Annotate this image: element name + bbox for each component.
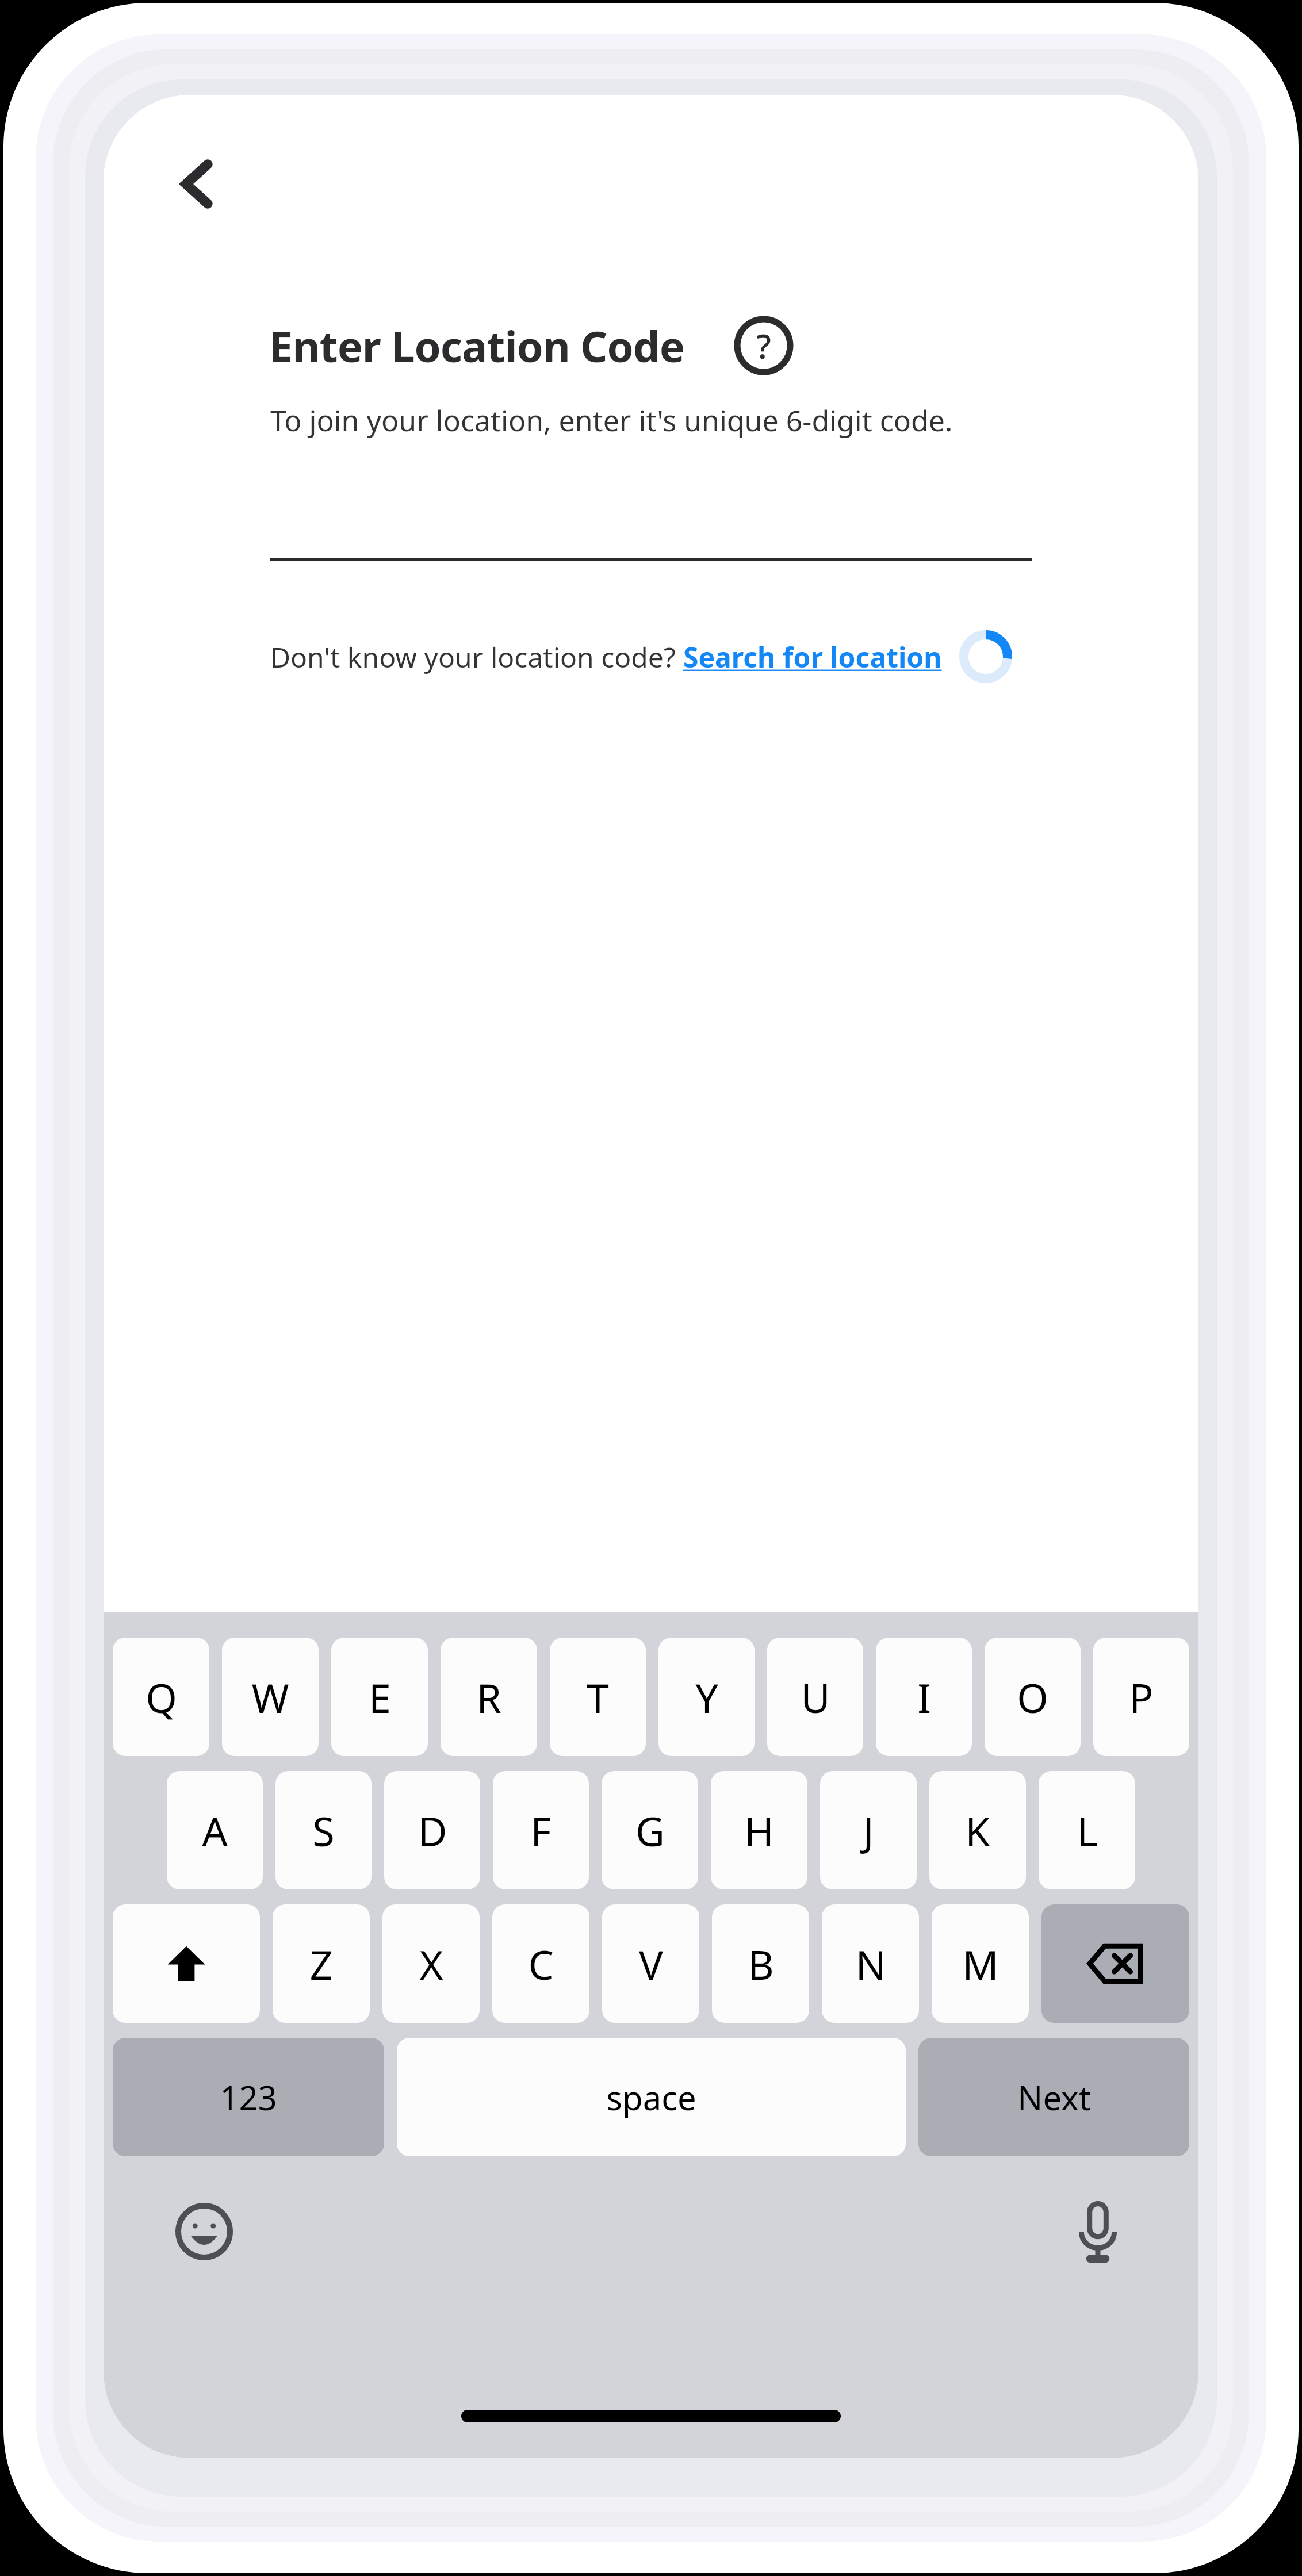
staticText: K [965, 1803, 990, 1858]
button[interactable]: W [222, 1638, 319, 1756]
staticText: I [917, 1670, 931, 1724]
staticText: L [1077, 1803, 1098, 1858]
staticText: M [962, 1937, 999, 1991]
button[interactable]: Help [732, 313, 796, 378]
button[interactable]: P [1093, 1638, 1189, 1756]
button[interactable]: L [1039, 1771, 1135, 1889]
button[interactable]: B [712, 1904, 809, 2023]
staticText: T [587, 1670, 609, 1724]
staticText: W [251, 1670, 289, 1724]
staticText: 123 [220, 2075, 277, 2120]
staticText: H [744, 1803, 774, 1858]
button[interactable]: R [441, 1638, 537, 1756]
button[interactable]: space [397, 2038, 906, 2156]
staticText: C [528, 1937, 554, 1991]
staticText: D [418, 1803, 447, 1858]
staticText: A [202, 1803, 228, 1858]
button[interactable]: X [382, 1904, 480, 2023]
staticText: F [530, 1803, 552, 1858]
staticText: Q [145, 1670, 177, 1724]
button[interactable]: Next [918, 2038, 1189, 2156]
button[interactable]: C [492, 1904, 589, 2023]
button[interactable]: F [493, 1771, 589, 1889]
staticText: Z [309, 1937, 333, 1991]
button[interactable]: Voice input [1060, 2194, 1135, 2269]
button[interactable]: M [932, 1904, 1029, 2023]
button[interactable]: G [602, 1771, 698, 1889]
staticText: J [863, 1803, 874, 1858]
staticText: P [1129, 1670, 1154, 1724]
button[interactable]: J [820, 1771, 917, 1889]
button[interactable]: 123 [113, 2038, 384, 2156]
staticText: ? [756, 323, 771, 369]
staticText: B [748, 1937, 774, 1991]
button[interactable]: Backspace [1041, 1904, 1189, 2023]
button[interactable] [270, 558, 1032, 561]
staticText: Don't know your location code? [270, 638, 683, 676]
button[interactable]: V [602, 1904, 699, 2023]
button[interactable]: D [384, 1771, 480, 1889]
staticText: U [801, 1670, 830, 1724]
button[interactable]: Shift [113, 1904, 260, 2023]
button[interactable]: T [550, 1638, 646, 1756]
button[interactable]: Back [144, 129, 253, 239]
button[interactable]: Q [113, 1638, 209, 1756]
staticText: space [606, 2075, 696, 2120]
staticText: S [312, 1803, 335, 1858]
button[interactable]: I [876, 1638, 972, 1756]
button[interactable]: N [822, 1904, 919, 2023]
button[interactable]: Search for location [683, 638, 942, 676]
button[interactable]: K [929, 1771, 1026, 1889]
staticText: O [1017, 1670, 1048, 1724]
button[interactable]: Z [273, 1904, 370, 2023]
button[interactable]: Y [658, 1638, 755, 1756]
button[interactable]: E [331, 1638, 428, 1756]
button[interactable]: U [767, 1638, 863, 1756]
staticText: V [639, 1937, 663, 1991]
staticText: Y [695, 1670, 718, 1724]
button[interactable]: O [985, 1638, 1081, 1756]
staticText: X [419, 1937, 443, 1991]
button[interactable]: Emoji [167, 2194, 242, 2269]
button[interactable]: A [167, 1771, 263, 1889]
staticText: G [635, 1803, 665, 1858]
staticText: To join your location, enter it's unique… [270, 401, 953, 440]
staticText: E [369, 1670, 391, 1724]
button[interactable]: S [275, 1771, 372, 1889]
staticText: Enter Location Code [269, 317, 684, 375]
button[interactable]: H [711, 1771, 807, 1889]
staticText: Next [1017, 2075, 1091, 2120]
staticText: N [855, 1937, 886, 1991]
staticText: R [476, 1670, 501, 1724]
